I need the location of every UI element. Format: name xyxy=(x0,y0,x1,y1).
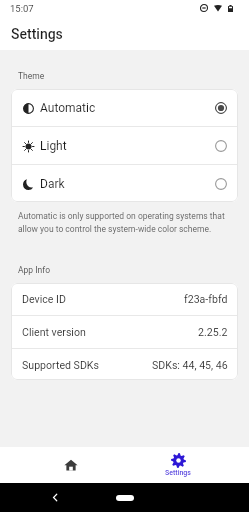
other: Back xyxy=(51,493,60,502)
button[interactable]: Device ID xyxy=(11,283,238,315)
staticText: Settings xyxy=(165,469,191,477)
button[interactable]: Settings xyxy=(124,447,231,483)
button[interactable]: Home xyxy=(18,447,124,483)
button[interactable]: Automatic xyxy=(11,89,238,126)
staticText: Client version xyxy=(22,326,86,338)
staticText: Automatic xyxy=(40,101,96,115)
button[interactable]: Light xyxy=(11,127,238,164)
staticText: 15:07 xyxy=(10,3,34,14)
button[interactable]: Dark xyxy=(11,165,238,202)
staticText: App Info xyxy=(18,265,51,275)
staticText: Automatic is only supported on operating… xyxy=(18,211,229,234)
button[interactable]: Client version xyxy=(11,316,238,348)
staticText: Device ID xyxy=(22,293,66,305)
button[interactable]: Supported SDKs xyxy=(11,349,238,380)
staticText: Supported SDKs xyxy=(22,359,99,371)
staticText: 2.25.2 xyxy=(198,326,228,338)
staticText: Settings xyxy=(11,26,63,42)
staticText: Dark xyxy=(40,177,65,191)
staticText: Light xyxy=(40,139,67,153)
staticText: f23a-fbfd xyxy=(184,293,228,305)
staticText: Theme xyxy=(18,71,45,81)
staticText: SDKs: 44, 45, 46 xyxy=(152,359,228,371)
